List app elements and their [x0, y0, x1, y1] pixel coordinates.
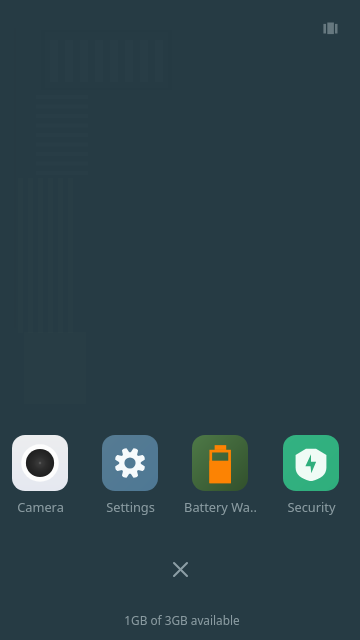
staticText: Settings — [106, 498, 155, 515]
staticText: Camera — [17, 498, 64, 515]
staticText: Battery Wa.. — [184, 498, 257, 515]
button[interactable]: Settings — [85, 435, 175, 515]
staticText: 1GB of 3GB available — [124, 612, 240, 628]
button[interactable]: Close all — [160, 549, 200, 589]
staticText: Security — [287, 498, 336, 515]
button[interactable]: Battery Wa.. — [175, 435, 265, 515]
button[interactable]: Camera — [0, 435, 85, 515]
button[interactable]: Lock all recent apps — [308, 8, 352, 52]
button[interactable]: Security — [266, 435, 356, 515]
